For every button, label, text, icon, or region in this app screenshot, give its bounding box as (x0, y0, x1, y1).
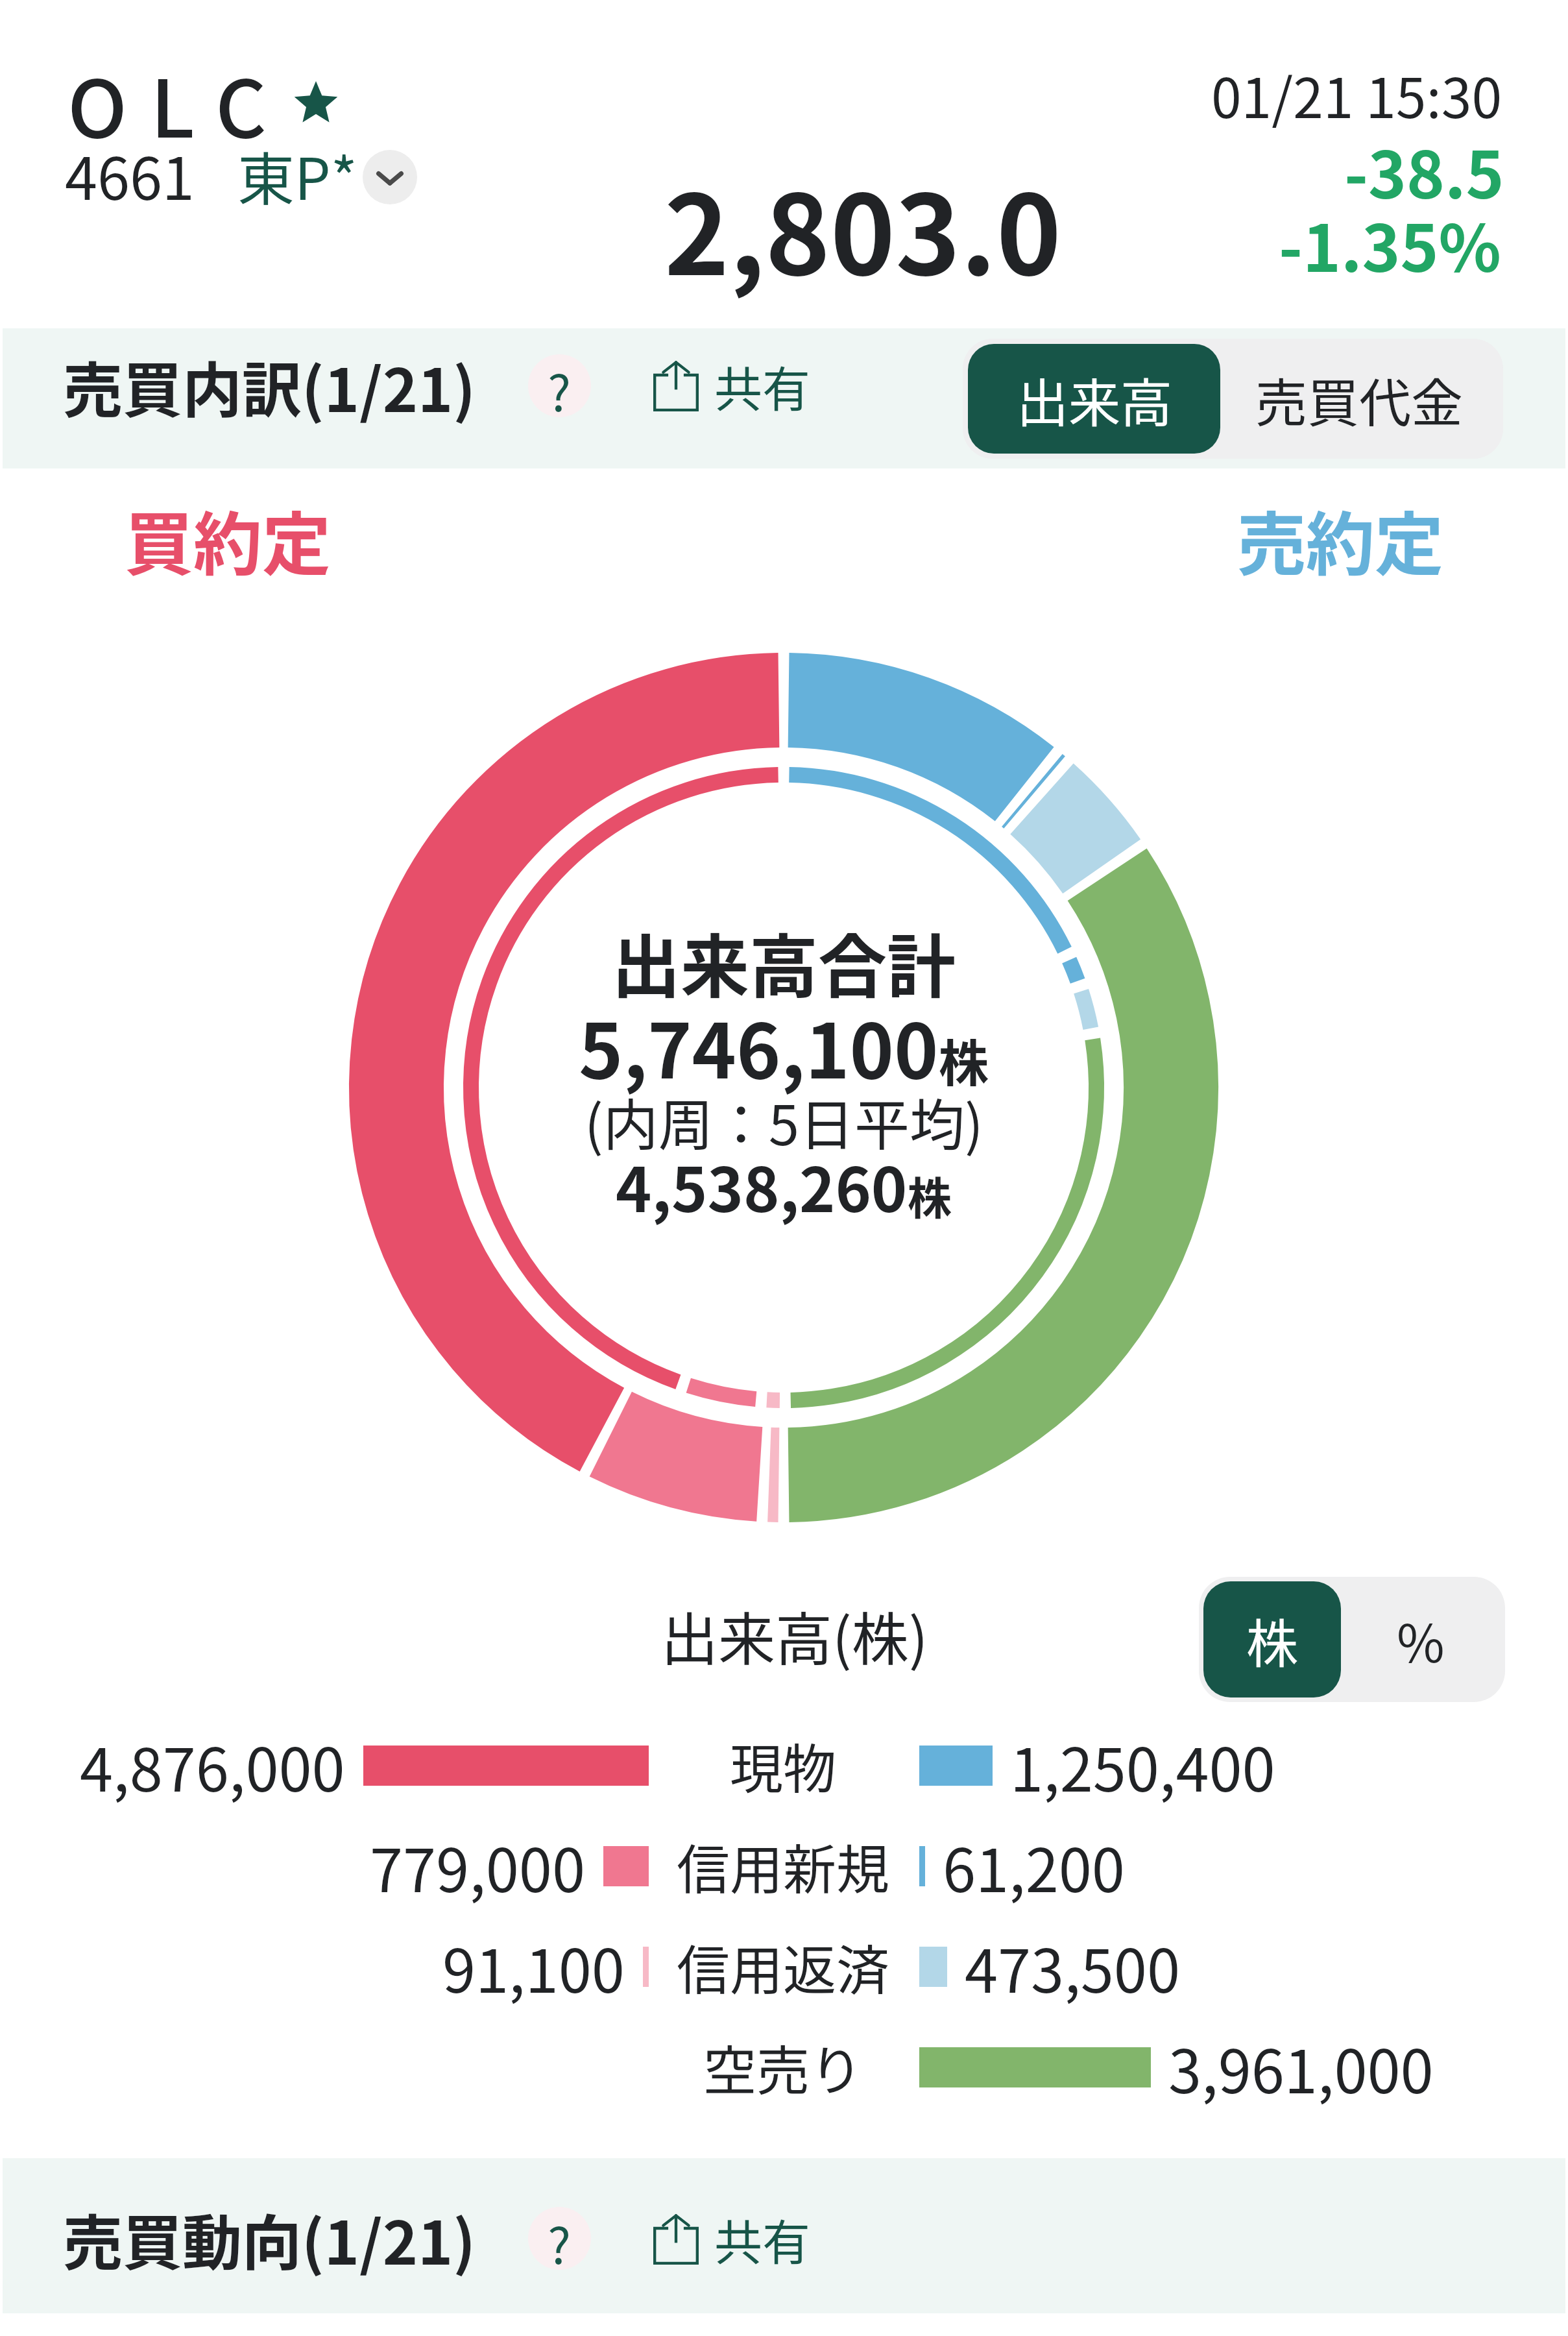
staticText: 株 (939, 1024, 989, 1096)
staticText: 出来高(株) (661, 1594, 928, 1676)
staticText: 4,538,260 (616, 1141, 908, 1230)
staticText: -1.35% (1279, 197, 1501, 291)
staticText: 売買動向(1/21) (63, 2195, 476, 2281)
button[interactable]: Help (528, 2207, 591, 2270)
staticText: 出来高合計 (612, 912, 956, 1011)
staticText: 1,250,400 (1010, 1722, 1275, 1808)
staticText: 売買代金 (1255, 361, 1463, 437)
staticText: 空売り (703, 2028, 863, 2106)
button[interactable]: 共有 (653, 2193, 810, 2284)
button[interactable]: 株 (1203, 1581, 1341, 1697)
button[interactable]: 売買代金 (1220, 344, 1498, 454)
button[interactable]: Help (528, 354, 591, 417)
staticText: 信用返済 (677, 1928, 890, 2005)
staticText: 株 (908, 1163, 952, 1227)
staticText: 5,746,100 (579, 991, 939, 1100)
staticText: 株 (1246, 1602, 1298, 1677)
staticText: 買約定 (125, 489, 331, 589)
staticText: 売買内訳(1/21) (63, 343, 476, 429)
button[interactable]: 出来高 (968, 344, 1220, 454)
staticText: 共有 (714, 2204, 810, 2274)
staticText: 出来高 (1017, 361, 1172, 437)
button[interactable]: % (1341, 1581, 1501, 1697)
staticText: 売約定 (1237, 489, 1443, 589)
staticText: 現物 (730, 1727, 837, 1804)
button[interactable]: Expand market (363, 150, 417, 204)
staticText: 東P* (237, 134, 357, 216)
staticText: -38.5 (1344, 123, 1504, 217)
staticText: 共有 (714, 351, 810, 420)
button[interactable]: 共有 (653, 340, 810, 431)
staticText: ? (548, 354, 572, 417)
staticText: OLC (67, 45, 290, 160)
staticText: 01/21 15:30 (1211, 55, 1502, 134)
staticText: 91,100 (442, 1923, 625, 2010)
staticText: 473,500 (965, 1923, 1180, 2010)
staticText: 4,876,000 (80, 1722, 345, 1808)
staticText: % (1397, 1602, 1445, 1677)
staticText: (内周：5日平均) (585, 1081, 983, 1161)
staticText: 信用新規 (677, 1827, 890, 1904)
staticText: 4661 (65, 132, 195, 217)
staticText: 61,200 (943, 1823, 1125, 1909)
staticText: ? (548, 2207, 572, 2270)
staticText: 3,961,000 (1168, 2024, 1434, 2110)
staticText: 779,000 (370, 1823, 585, 1909)
staticText: 2,803.0 (664, 147, 1062, 307)
